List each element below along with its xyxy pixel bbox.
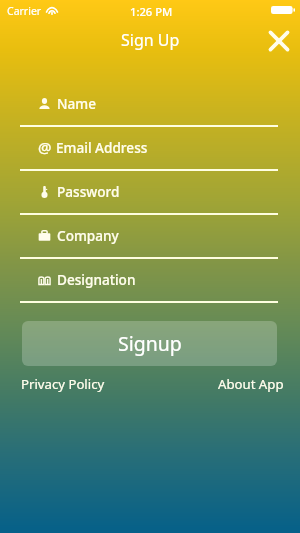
button[interactable]: Designation — [0, 266, 300, 292]
button[interactable]: Signup — [22, 321, 277, 366]
button[interactable]: Close — [266, 28, 292, 54]
staticText: 1:26 PM — [130, 4, 173, 19]
button[interactable]: Password — [0, 178, 300, 204]
button[interactable]: Company — [0, 222, 300, 248]
button[interactable]: About App — [218, 373, 284, 395]
button[interactable]: Privacy Policy — [21, 373, 105, 395]
button[interactable]: @ — [0, 134, 300, 160]
staticText: Sign Up — [121, 29, 180, 51]
staticText: Designation — [57, 270, 136, 289]
staticText: Email Address — [56, 138, 148, 157]
staticText: Password — [57, 182, 120, 201]
staticText: Name — [57, 94, 97, 113]
staticText: Company — [57, 226, 119, 245]
button[interactable]: Name — [0, 90, 300, 116]
staticText: Signup — [118, 330, 182, 357]
staticText: About App — [218, 375, 284, 393]
staticText: Privacy Policy — [21, 375, 105, 393]
staticText: Carrier — [7, 4, 42, 18]
staticText: @ — [38, 137, 52, 157]
